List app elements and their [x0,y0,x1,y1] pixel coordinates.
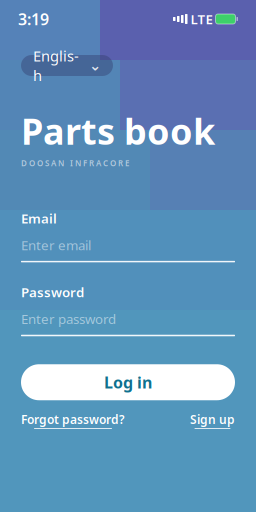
staticText: Password [21,283,84,301]
staticText: Sign up [190,411,235,427]
staticText: Enter email [21,236,91,254]
staticText: ⌄ [89,57,101,74]
staticText: D O O S A N I N F R A C O R E [21,158,129,168]
button[interactable]: Log in [21,364,235,400]
staticText: Enter password [21,310,116,328]
staticText: 3:19 [18,8,49,30]
button[interactable]: English [21,55,113,76]
button[interactable]: Sign up [190,411,235,429]
staticText: LTE [190,10,212,28]
staticText: Parts book [21,107,215,155]
staticText: Forgot password? [21,411,125,427]
button[interactable]: Forgot password? [21,411,125,429]
staticText: Email [21,209,57,227]
staticText: English [33,46,79,85]
staticText: Log in [104,372,152,393]
